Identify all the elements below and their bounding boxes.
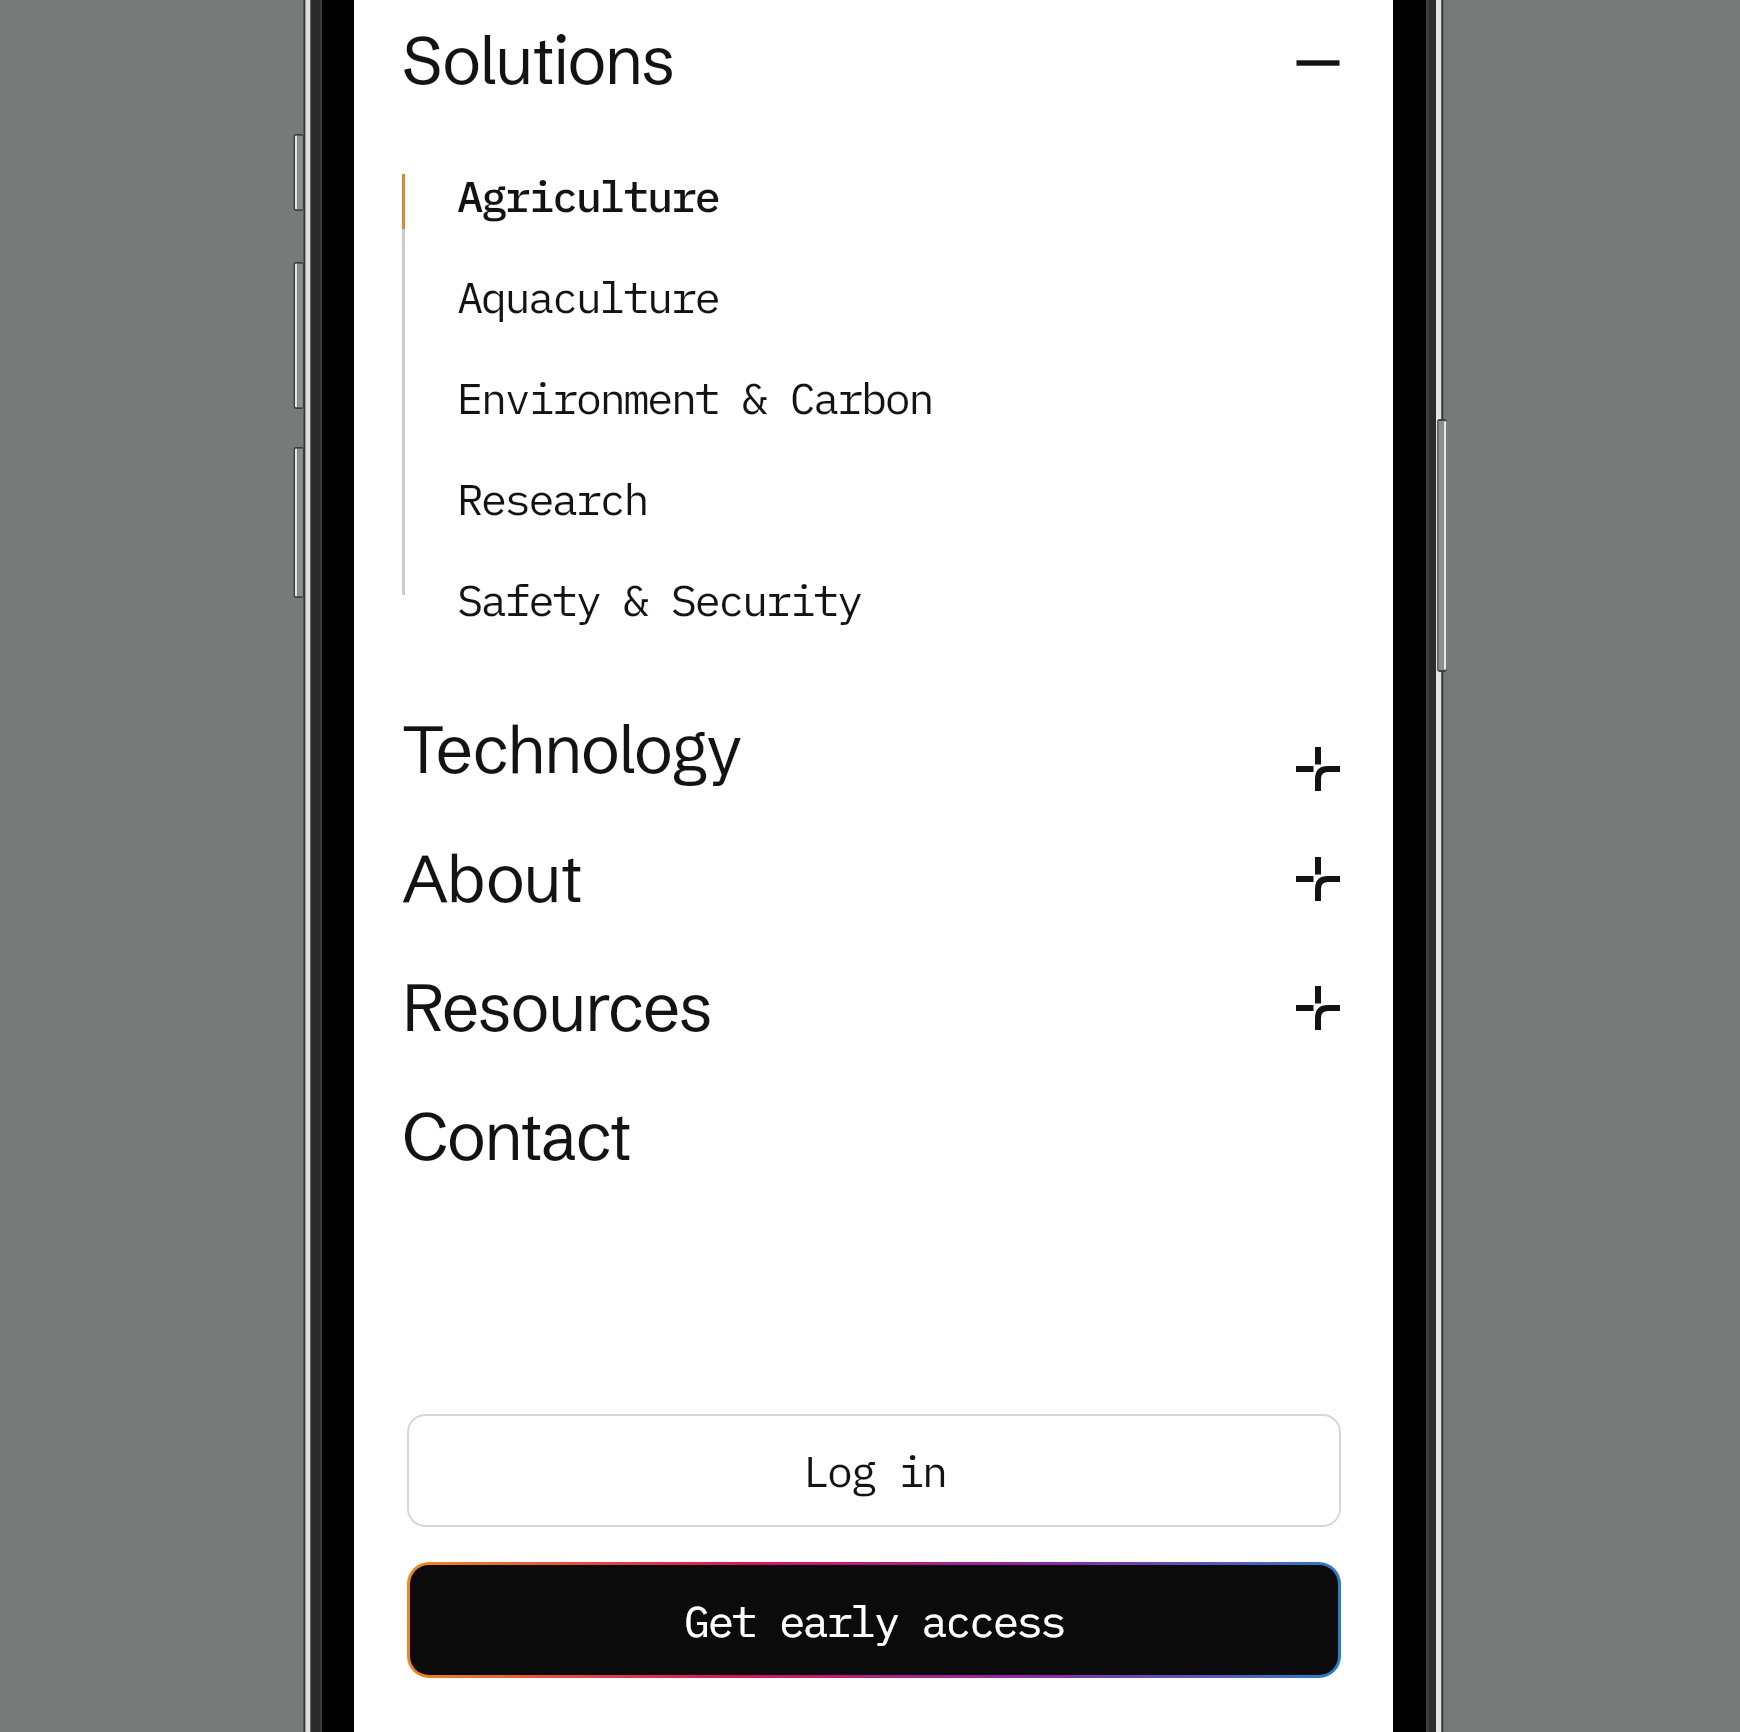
other: Expand Resources	[1296, 986, 1340, 1030]
staticText: Aquaculture	[457, 268, 719, 325]
button[interactable]: Solutions	[354, 0, 1393, 124]
button[interactable]: Environment & Carbon	[354, 347, 1393, 448]
staticText: Contact	[402, 1096, 631, 1177]
other: Expand Technology	[1296, 747, 1340, 791]
staticText: Log in	[803, 1442, 946, 1499]
staticText: Environment & Carbon	[457, 369, 932, 426]
button[interactable]: Resources	[354, 943, 1393, 1072]
staticText: Solutions	[402, 20, 674, 101]
button[interactable]: Agriculture	[354, 145, 1393, 246]
staticText: Agriculture	[457, 167, 719, 224]
button[interactable]: Get early access	[410, 1565, 1338, 1675]
staticText: Get early access	[684, 1592, 1064, 1649]
other: Collapse Solutions	[1296, 38, 1340, 82]
staticText: Research	[457, 470, 647, 527]
staticText: Resources	[402, 967, 712, 1048]
staticText: About	[402, 838, 582, 919]
other: Expand About	[1296, 857, 1340, 901]
button[interactable]: Log in	[407, 1414, 1341, 1527]
button[interactable]: About	[354, 814, 1393, 943]
button[interactable]: Aquaculture	[354, 246, 1393, 347]
button[interactable]: Research	[354, 448, 1393, 549]
button[interactable]: Contact	[354, 1072, 1393, 1201]
staticText: Technology	[402, 709, 741, 790]
staticText: Safety & Security	[457, 571, 861, 628]
button[interactable]: Technology	[354, 685, 1393, 814]
button[interactable]: Safety & Security	[354, 549, 1393, 650]
